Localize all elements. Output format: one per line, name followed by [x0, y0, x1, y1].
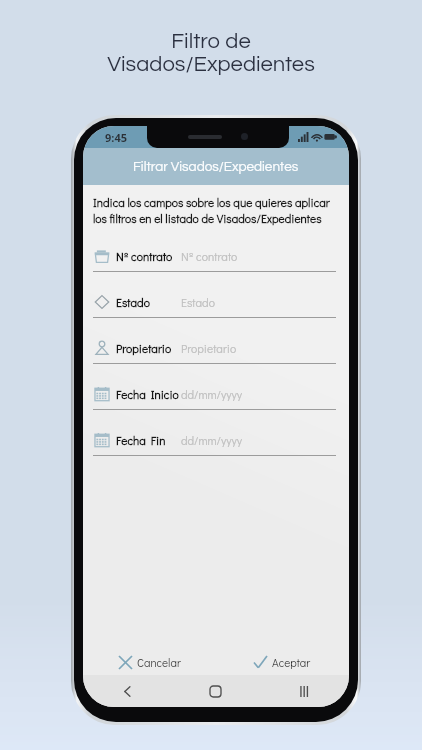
button[interactable]: Home: [171, 675, 260, 707]
staticText: Filtrar Visados/Expedientes: [133, 160, 299, 174]
button[interactable]: Fecha Fin: [93, 425, 336, 471]
button[interactable]: Fecha Inicio: [93, 379, 336, 425]
staticText: 9:45: [105, 130, 127, 145]
staticText: los filtros en el listado de Visados/Exp…: [93, 211, 322, 226]
staticText: Filtro de: [171, 30, 251, 53]
staticText: Fecha Fin: [116, 433, 166, 448]
staticText: dd/mm/yyyy: [181, 433, 242, 448]
staticText: Nº contrato: [181, 249, 238, 264]
button[interactable]: Recent apps: [260, 675, 349, 707]
button[interactable]: Estado: [93, 287, 336, 333]
staticText: Estado: [116, 295, 150, 310]
button[interactable]: Cancelar: [83, 644, 216, 680]
staticText: Fecha Inicio: [116, 387, 179, 402]
button[interactable]: Nº contrato: [93, 241, 336, 287]
staticText: Aceptar: [272, 655, 311, 670]
staticText: Propietario: [181, 341, 237, 356]
staticText: Cancelar: [137, 655, 181, 670]
button[interactable]: Propietario: [93, 333, 336, 379]
staticText: Nº contrato: [116, 249, 173, 264]
staticText: Visados/Expedientes: [107, 53, 315, 76]
button[interactable]: Back: [83, 675, 171, 707]
button[interactable]: Aceptar: [216, 644, 349, 680]
staticText: dd/mm/yyyy: [181, 387, 242, 402]
staticText: Indica los campos sobre los que quieres …: [93, 195, 330, 210]
staticText: Estado: [181, 295, 215, 310]
staticText: Propietario: [116, 341, 172, 356]
